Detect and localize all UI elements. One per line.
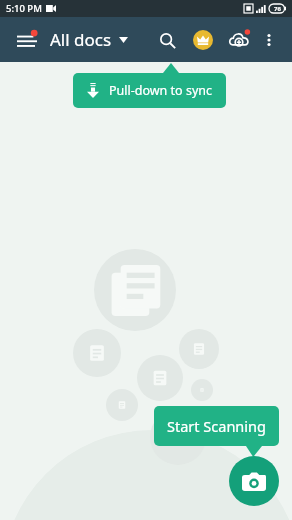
button[interactable]: Search — [152, 25, 182, 55]
button[interactable]: Start scanning with camera — [229, 456, 279, 506]
button[interactable]: Start Scanning — [154, 406, 279, 446]
button[interactable]: All docs — [50, 28, 128, 51]
staticText: Pull-down to sync — [109, 82, 212, 99]
staticText: All docs — [50, 28, 112, 51]
button[interactable]: Cloud upload — [224, 25, 254, 55]
button[interactable]: More options — [256, 27, 282, 53]
button[interactable]: Pull-down to sync — [73, 73, 226, 108]
button[interactable]: Open navigation drawer — [10, 23, 44, 57]
staticText: 5:10 PM — [6, 2, 42, 15]
staticText: 76 — [274, 5, 281, 13]
button[interactable]: Premium — [188, 25, 218, 55]
staticText: Start Scanning — [167, 416, 266, 436]
